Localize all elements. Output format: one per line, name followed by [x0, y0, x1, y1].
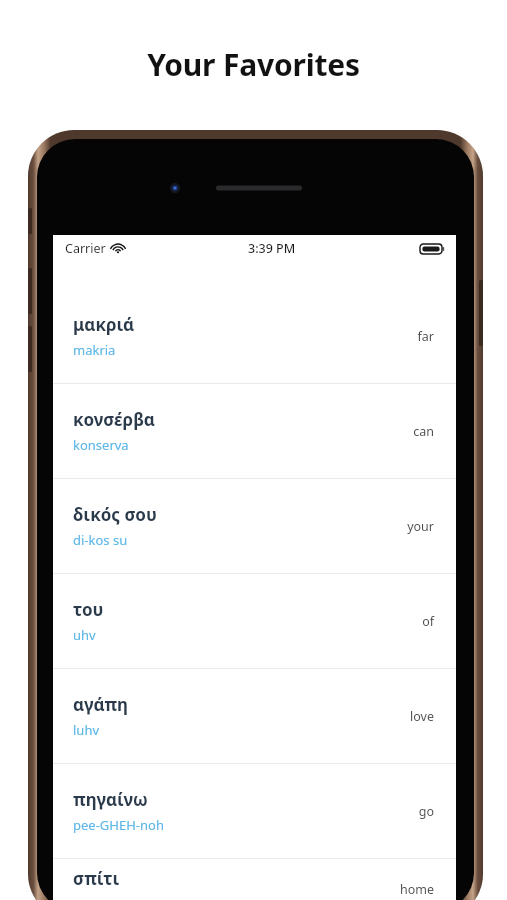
staticText: far	[417, 328, 434, 345]
button[interactable]: του	[53, 574, 456, 668]
staticText: of	[422, 613, 434, 630]
staticText: luhv	[73, 721, 100, 739]
button[interactable]: κονσέρβα	[53, 384, 456, 478]
staticText: pee-GHEH-noh	[73, 816, 164, 834]
staticText: uhv	[73, 626, 96, 644]
staticText: μακριά	[73, 313, 135, 336]
staticText: go	[418, 803, 434, 820]
button[interactable]: αγάπη	[53, 669, 456, 763]
button[interactable]: πηγαίνω	[53, 764, 456, 858]
staticText: Your Favorites	[0, 44, 507, 85]
staticText: love	[410, 708, 434, 725]
staticText: 3:39 PM	[248, 240, 296, 257]
button[interactable]: δικός σου	[53, 479, 456, 573]
staticText: του	[73, 598, 104, 621]
staticText: δικός σου	[73, 503, 157, 526]
staticText: κονσέρβα	[73, 408, 156, 431]
staticText: makria	[73, 341, 116, 359]
staticText: Carrier	[65, 240, 106, 257]
staticText: σπίτι	[73, 867, 120, 890]
staticText: your	[407, 518, 434, 535]
staticText: home	[399, 881, 434, 898]
button[interactable]: σπίτι	[53, 859, 456, 900]
staticText: can	[413, 423, 434, 440]
staticText: πηγαίνω	[73, 788, 148, 811]
staticText: αγάπη	[73, 693, 129, 716]
staticText: konserva	[73, 436, 129, 454]
staticText: di-kos su	[73, 531, 128, 549]
button[interactable]: μακριά	[53, 289, 456, 383]
